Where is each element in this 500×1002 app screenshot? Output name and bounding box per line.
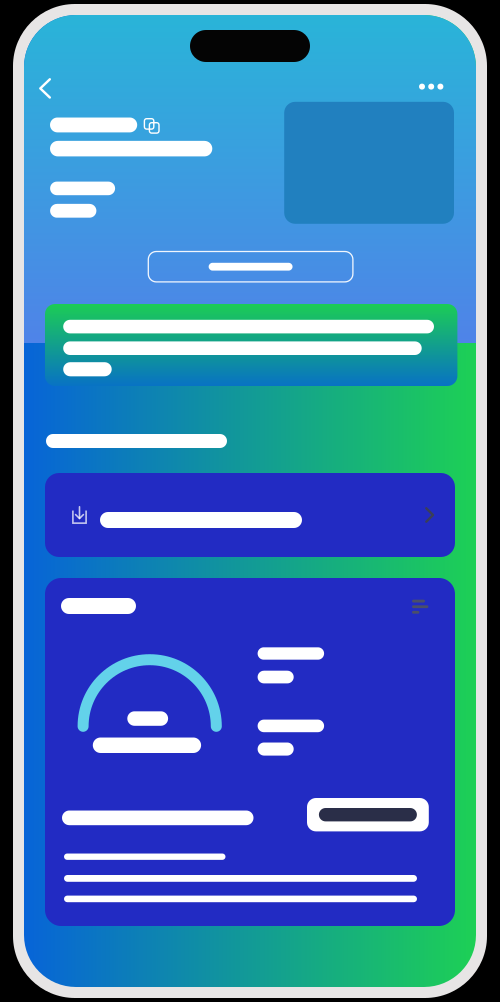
button[interactable]: Download	[45, 473, 455, 557]
button[interactable]: More options	[411, 70, 451, 104]
button[interactable]: Filter	[406, 594, 434, 620]
button[interactable]: Back	[29, 68, 61, 110]
button[interactable]: Primary action	[148, 251, 353, 282]
button[interactable]: Copy value	[307, 798, 429, 831]
button[interactable]: Copy address	[139, 114, 164, 139]
